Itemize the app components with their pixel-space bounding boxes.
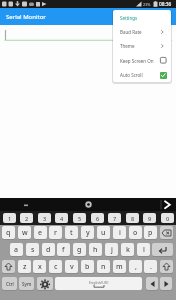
button[interactable]	[160, 226, 173, 239]
staticText: k	[126, 245, 130, 255]
staticText: 6	[96, 215, 100, 222]
button[interactable]: x	[33, 260, 46, 273]
button[interactable]: g	[73, 243, 86, 256]
button[interactable]: l	[137, 243, 150, 256]
button[interactable]: f	[57, 243, 70, 256]
button[interactable]	[152, 243, 173, 256]
staticText: e	[38, 228, 43, 238]
staticText: x	[38, 262, 42, 272]
button[interactable]: ,	[129, 260, 142, 273]
button[interactable]: u	[97, 226, 110, 239]
button[interactable]	[146, 277, 158, 290]
staticText: r	[54, 228, 57, 238]
staticText: 0	[166, 215, 170, 222]
button[interactable]	[160, 277, 172, 290]
button[interactable]: i	[113, 226, 126, 239]
button[interactable]: e	[34, 226, 47, 239]
button[interactable]: Baud Rate	[113, 25, 171, 39]
staticText: i	[119, 228, 121, 238]
button[interactable]: English(UK)	[55, 277, 142, 290]
button[interactable]	[37, 277, 53, 290]
staticText: b	[85, 262, 90, 272]
staticText: .	[150, 262, 152, 272]
staticText: t	[70, 228, 73, 238]
staticText: c	[54, 262, 58, 272]
staticText: Auto Scroll	[120, 72, 143, 78]
button[interactable]: Sym	[19, 277, 34, 290]
staticText: m	[116, 262, 123, 272]
staticText: s	[31, 245, 35, 255]
button[interactable]: 3	[38, 213, 51, 223]
button[interactable]: q	[2, 226, 15, 239]
button[interactable]: m	[113, 260, 126, 273]
button[interactable]: t	[65, 226, 78, 239]
staticText: ,	[135, 262, 137, 272]
staticText: Keep Screen On	[120, 58, 154, 64]
button[interactable]: y	[81, 226, 94, 239]
staticText: o	[133, 228, 138, 238]
staticText: l	[143, 245, 145, 255]
button[interactable]: 1	[3, 213, 16, 223]
button[interactable]: Keep Screen On	[113, 53, 171, 68]
button[interactable]: v	[65, 260, 78, 273]
staticText: j	[111, 245, 113, 255]
button[interactable]: Ctrl	[2, 277, 17, 290]
button[interactable]: b	[81, 260, 94, 273]
staticText: u	[101, 228, 106, 238]
staticText: 4	[60, 215, 64, 222]
staticText: Sym	[22, 281, 32, 287]
button[interactable]	[0, 25, 176, 198]
button[interactable]	[2, 260, 15, 273]
button[interactable]: Settings	[113, 10, 171, 25]
staticText: Settings	[120, 15, 138, 21]
staticText: 5	[78, 215, 82, 222]
button[interactable]: p	[144, 226, 157, 239]
button[interactable]: r	[49, 226, 62, 239]
staticText: n	[101, 262, 106, 272]
staticText: 9	[148, 215, 152, 222]
staticText: d	[46, 245, 51, 255]
staticText: Baud Rate	[120, 29, 142, 35]
button[interactable]: z	[18, 260, 31, 273]
button[interactable]: 8	[126, 213, 139, 223]
staticText: 3	[43, 215, 47, 222]
staticText: 23%	[143, 2, 151, 7]
button[interactable]: a	[10, 243, 23, 256]
button[interactable]: d	[42, 243, 55, 256]
button[interactable]: Theme	[113, 39, 171, 53]
staticText: h	[93, 245, 98, 255]
button[interactable]	[160, 260, 173, 273]
button[interactable]: n	[97, 260, 110, 273]
button[interactable]: 9	[143, 213, 156, 223]
button[interactable]: 6	[91, 213, 104, 223]
staticText: Theme	[120, 43, 135, 49]
staticText: a	[14, 245, 19, 255]
staticText: 8	[131, 215, 135, 222]
button[interactable]: 2	[20, 213, 33, 223]
button[interactable]: k	[121, 243, 134, 256]
staticText: w	[22, 228, 28, 238]
staticText: p	[148, 228, 153, 238]
staticText: g	[77, 245, 82, 255]
button[interactable]: c	[49, 260, 62, 273]
button[interactable]: 0	[161, 213, 174, 223]
staticText: 7	[113, 215, 117, 222]
staticText: 2	[25, 215, 29, 222]
staticText: 08:36	[159, 1, 172, 8]
button[interactable]: .	[144, 260, 157, 273]
staticText: Serial Monitor	[6, 13, 46, 21]
button[interactable]: 4	[55, 213, 68, 223]
button[interactable]: s	[26, 243, 39, 256]
button[interactable]: w	[18, 226, 31, 239]
button[interactable]: Auto Scroll	[113, 68, 171, 82]
staticText: q	[6, 228, 11, 238]
button[interactable]: 7	[108, 213, 121, 223]
button[interactable]: h	[89, 243, 102, 256]
button[interactable]: 5	[73, 213, 86, 223]
button[interactable]: o	[129, 226, 142, 239]
button[interactable]: j	[105, 243, 118, 256]
staticText: 1	[8, 215, 12, 222]
staticText: z	[23, 262, 27, 272]
staticText: Ctrl	[6, 281, 14, 287]
staticText: y	[86, 228, 90, 238]
